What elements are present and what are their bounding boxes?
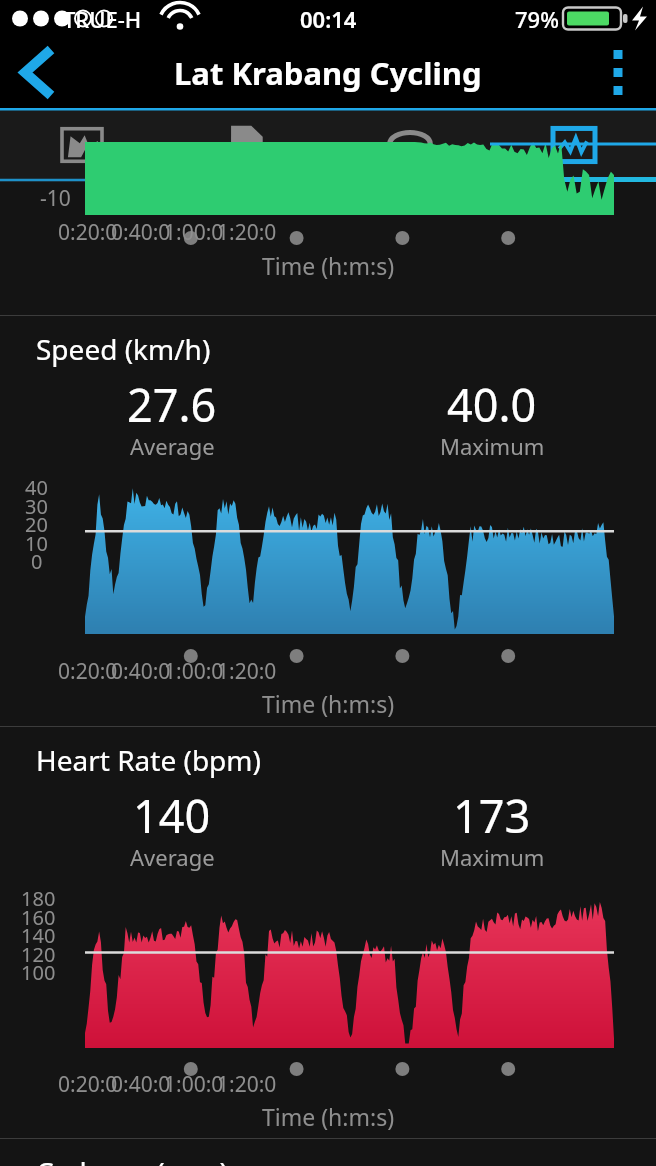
staticText: 00:14 bbox=[300, 4, 357, 34]
button[interactable]: Laps bbox=[328, 108, 492, 182]
staticText: 1:00:0 bbox=[164, 657, 224, 686]
staticText: 1:00:0 bbox=[164, 1070, 224, 1099]
staticText: 79% bbox=[515, 4, 559, 34]
staticText: -10 bbox=[40, 184, 71, 213]
staticText: 160 bbox=[21, 904, 56, 931]
staticText: 140 bbox=[133, 785, 211, 846]
staticText: 120 bbox=[21, 941, 56, 968]
staticText: Time (h:m:s) bbox=[262, 250, 395, 281]
staticText: Average bbox=[130, 842, 215, 872]
staticText: 180 bbox=[21, 885, 56, 912]
staticText: 1:20:0 bbox=[217, 657, 277, 686]
staticText: Speed (km/h) bbox=[36, 330, 211, 368]
staticText: Maximum bbox=[440, 842, 545, 872]
staticText: Average bbox=[130, 431, 215, 461]
staticText: 0:40:0 bbox=[111, 218, 171, 247]
staticText: 0:20:0 bbox=[58, 1070, 118, 1099]
staticText: Lat Krabang Cycling bbox=[174, 52, 482, 94]
button[interactable]: More options bbox=[584, 37, 656, 108]
staticText: 40.0 bbox=[447, 374, 537, 435]
staticText: 1:20:0 bbox=[217, 218, 277, 247]
staticText: 0:40:0 bbox=[111, 1070, 171, 1099]
staticText: 173 bbox=[453, 785, 531, 846]
staticText: 0:20:0 bbox=[58, 657, 118, 686]
staticText: 0 bbox=[31, 548, 43, 575]
staticText: 0:20:0 bbox=[58, 218, 118, 247]
staticText: 20 bbox=[25, 511, 48, 538]
staticText: Time (h:m:s) bbox=[262, 688, 395, 719]
button[interactable]: Map bbox=[0, 108, 164, 182]
staticText: Maximum bbox=[440, 431, 545, 461]
staticText: 0:40:0 bbox=[111, 657, 171, 686]
staticText: 1:20:0 bbox=[217, 1070, 277, 1099]
button[interactable]: Back bbox=[0, 37, 72, 108]
button[interactable]: Graphs bbox=[492, 108, 656, 182]
staticText: Time (h:m:s) bbox=[262, 1101, 395, 1132]
staticText: TRUE-H bbox=[63, 4, 142, 34]
staticText: 40 bbox=[25, 474, 48, 501]
staticText: 1:00:0 bbox=[164, 218, 224, 247]
staticText: 10 bbox=[25, 530, 48, 557]
staticText: 30 bbox=[25, 493, 48, 520]
staticText: Heart Rate (bpm) bbox=[36, 741, 261, 779]
button[interactable]: Details bbox=[164, 108, 328, 182]
staticText: Cadence (rpm) bbox=[36, 1153, 228, 1166]
staticText: 100 bbox=[21, 959, 56, 986]
staticText: 27.6 bbox=[127, 374, 217, 435]
staticText: 140 bbox=[21, 922, 56, 949]
